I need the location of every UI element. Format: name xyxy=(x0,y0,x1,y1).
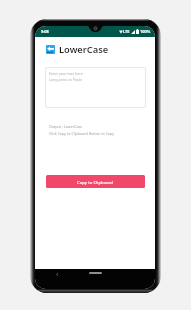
staticText: 9:08 xyxy=(41,29,49,34)
staticText: Long press to Paste xyxy=(49,77,83,82)
button[interactable]: Enter your text here xyxy=(45,67,146,108)
staticText: LTE xyxy=(123,29,130,34)
staticText: 100% xyxy=(140,29,151,34)
button[interactable]: Copy to Clipboard xyxy=(46,175,145,188)
staticText: LowerCase xyxy=(59,43,109,56)
button[interactable]: LowerCase xyxy=(46,43,109,56)
staticText: Click Copy to Clipboard Button to Copy xyxy=(49,131,115,136)
staticText: Enter your text here xyxy=(49,71,83,76)
staticText: Output : LowerCase xyxy=(49,124,83,129)
staticText: Copy to Clipboard xyxy=(77,179,114,185)
button[interactable]: Back xyxy=(54,271,61,278)
button[interactable]: Home xyxy=(89,272,102,274)
